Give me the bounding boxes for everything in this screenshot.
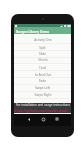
button[interactable]: Swipe Left [14,84,71,91]
staticText: Swipe Left [35,86,50,90]
staticText: In And Out [35,73,51,77]
button[interactable]: Swipe Right [14,91,71,98]
staticText: Swipe Right [34,93,52,97]
button[interactable]: Bungee Library Demo [14,27,71,34]
button[interactable]: Home [39,115,47,123]
staticText: Card [39,66,46,70]
staticText: Slide [39,52,46,56]
staticText: Fade [39,79,46,83]
staticText: Bungee Library Demo [16,30,50,34]
staticText: Activity One [34,38,52,42]
button[interactable]: In And Out [14,71,71,78]
button[interactable]: Back [25,115,33,123]
button[interactable]: Recents [53,115,61,123]
staticText: https://github.com/master-atul/bungee [14,108,71,113]
staticText: For installation and usage instructions [16,103,70,107]
button[interactable]: For installation and usage instructions [14,103,71,113]
staticText: Split [39,46,46,50]
button[interactable]: Split [14,44,71,51]
button[interactable]: Slide [14,50,71,57]
button[interactable]: Activity One [14,35,71,44]
button[interactable]: Fade [14,77,71,84]
button[interactable]: Card [14,64,71,71]
staticText: Shrink [38,58,48,62]
button[interactable]: Shrink [14,57,71,63]
